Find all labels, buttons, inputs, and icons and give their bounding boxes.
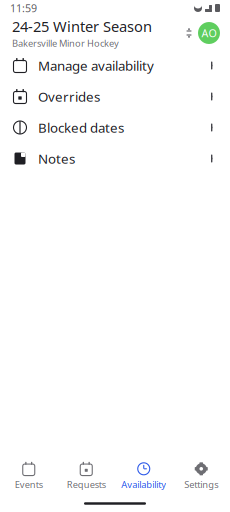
staticText: Bakersville Minor Hockey [12, 37, 119, 49]
staticText: 24-25 Winter Season [12, 17, 152, 36]
staticText: Notes [38, 150, 75, 167]
button[interactable]: Requests [57, 457, 115, 495]
button[interactable]: Account [196, 20, 222, 46]
button[interactable]: Events [0, 457, 57, 495]
staticText: 11:59 [10, 1, 37, 15]
staticText: Manage availability [38, 57, 154, 74]
button[interactable]: Notes [0, 143, 230, 174]
button[interactable]: Change season [182, 23, 196, 43]
staticText: Availability [121, 478, 166, 491]
button[interactable]: Settings [172, 457, 230, 495]
staticText: Events [15, 478, 43, 491]
button[interactable]: Availability [115, 457, 172, 495]
button[interactable]: Blocked dates [0, 112, 230, 143]
button[interactable]: Overrides [0, 81, 230, 112]
staticText: Overrides [38, 88, 100, 105]
button[interactable]: Manage availability [0, 50, 230, 81]
staticText: Requests [67, 478, 106, 491]
staticText: AO [201, 26, 216, 40]
staticText: Settings [184, 478, 218, 491]
staticText: Blocked dates [38, 119, 124, 136]
